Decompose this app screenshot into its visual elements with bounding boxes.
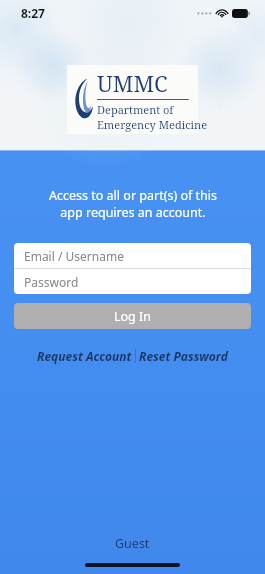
button[interactable]: Log In	[14, 303, 251, 329]
staticText: Email / Username	[24, 248, 124, 264]
staticText: Reset Password	[139, 348, 228, 364]
staticText: Password	[24, 274, 79, 290]
button[interactable]: Reset Password	[136, 346, 231, 366]
staticText: Log In	[114, 308, 152, 325]
staticText: Request Account	[37, 348, 132, 364]
button[interactable]: Email / Username	[14, 243, 251, 268]
staticText: UMMC	[97, 68, 168, 98]
staticText: Emergency Medicine	[97, 117, 208, 132]
staticText: Department of	[97, 102, 174, 117]
staticText: 8:27	[21, 5, 45, 21]
staticText: Guest	[115, 535, 150, 552]
button[interactable]: Guest	[101, 531, 164, 556]
staticText: Access to all or part(s) of this app req…	[49, 187, 217, 220]
button[interactable]: Request Account	[34, 346, 135, 366]
button[interactable]: Password	[14, 269, 251, 294]
